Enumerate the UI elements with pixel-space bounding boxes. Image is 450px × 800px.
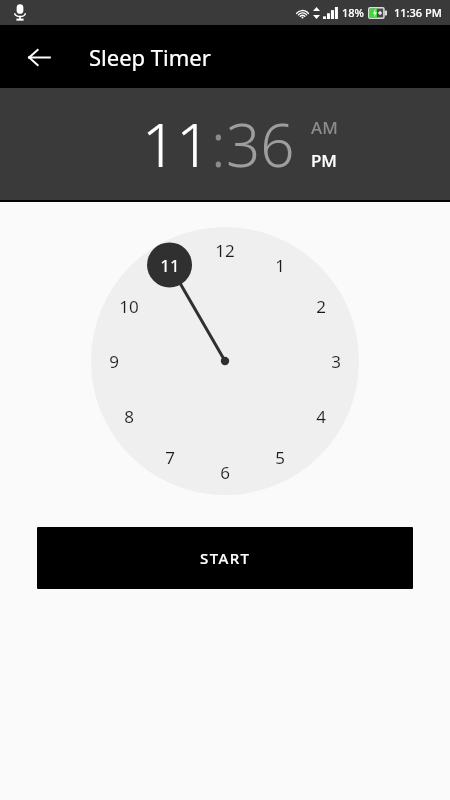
staticText: 11 [160, 254, 180, 277]
button[interactable]: START [37, 527, 413, 589]
staticText: : [211, 103, 226, 185]
staticText: START [200, 548, 251, 568]
button[interactable]: Back [16, 34, 62, 80]
staticText: 11:36 PM [394, 5, 442, 20]
button[interactable]: PM [311, 149, 337, 172]
button[interactable]: 36 [226, 103, 295, 185]
staticText: 4 [316, 405, 326, 428]
staticText: 9 [109, 350, 119, 373]
staticText: 2 [316, 295, 326, 318]
staticText: 7 [165, 446, 175, 469]
staticText: 10 [119, 295, 139, 318]
button[interactable]: 12 [91, 227, 359, 495]
button[interactable]: AM [311, 116, 338, 139]
staticText: AM [311, 116, 338, 139]
staticText: 18% [342, 5, 364, 20]
staticText: 3 [331, 350, 341, 373]
staticText: Sleep Timer [89, 42, 211, 72]
staticText: 1 [275, 254, 285, 277]
staticText: PM [311, 149, 337, 172]
staticText: 6 [220, 461, 230, 484]
staticText: 12 [215, 239, 235, 262]
staticText: 5 [275, 446, 285, 469]
staticText: 8 [124, 405, 134, 428]
button[interactable]: 11 [142, 103, 211, 185]
